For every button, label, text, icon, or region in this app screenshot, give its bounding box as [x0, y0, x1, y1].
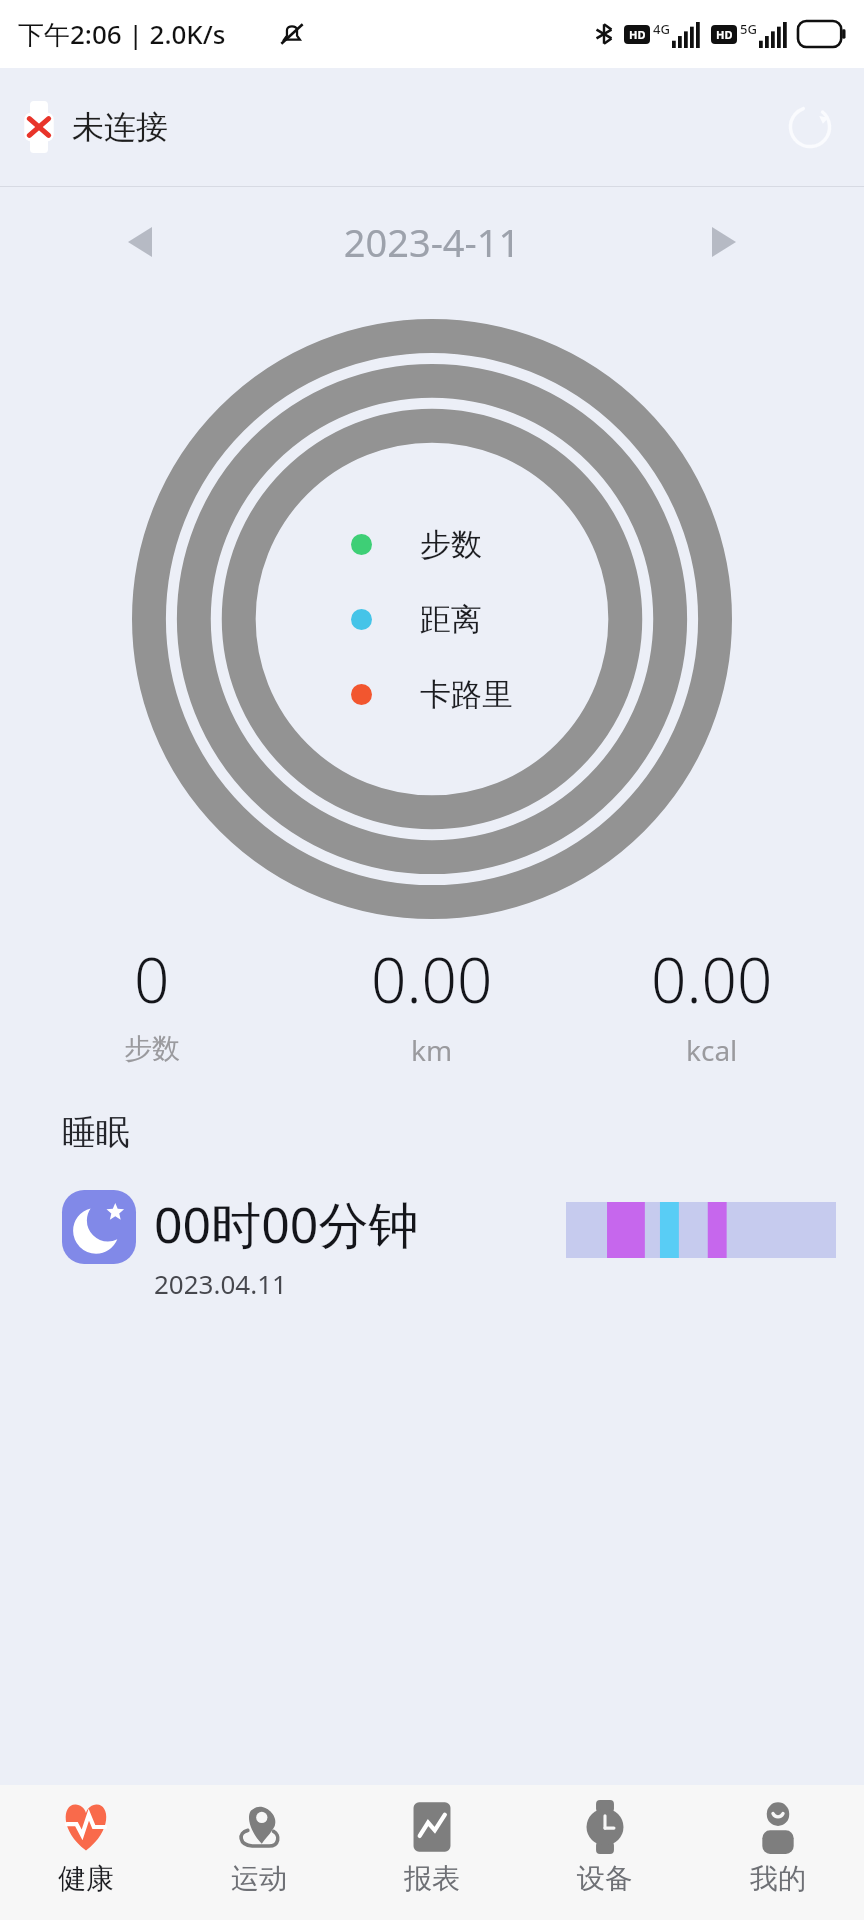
staticText: 运动: [231, 1861, 287, 1896]
button[interactable]: 00时00分钟: [62, 1190, 836, 1301]
staticText: 5G: [740, 20, 757, 38]
button[interactable]: 运动: [172, 1785, 345, 1920]
staticText: 距离: [420, 600, 482, 639]
staticText: 未连接: [72, 107, 168, 147]
staticText: 00时00分钟: [154, 1190, 419, 1258]
staticText: 步数: [420, 525, 482, 564]
button[interactable]: Next day: [694, 212, 754, 272]
staticText: km: [411, 1031, 453, 1069]
button[interactable]: 0.00: [572, 937, 852, 1069]
staticText: 我的: [750, 1861, 806, 1896]
button[interactable]: 0: [12, 937, 292, 1066]
staticText: 2023-4-11: [170, 216, 694, 268]
button[interactable]: 0.00: [292, 937, 572, 1069]
staticText: 步数: [124, 1031, 180, 1066]
staticText: 健康: [58, 1861, 114, 1896]
staticText: 下午2:06 | 2.0K/s: [18, 16, 226, 52]
button[interactable]: 健康: [0, 1785, 172, 1920]
staticText: 0: [134, 937, 170, 1021]
button[interactable]: 报表: [345, 1785, 518, 1920]
staticText: 0.00: [371, 937, 493, 1021]
staticText: 卡路里: [420, 675, 513, 714]
button[interactable]: Refresh: [782, 99, 838, 155]
button[interactable]: 设备: [518, 1785, 691, 1920]
staticText: 0.00: [651, 937, 773, 1021]
staticText: HD: [629, 27, 646, 42]
staticText: 4G: [653, 20, 670, 38]
staticText: HD: [716, 27, 733, 42]
staticText: kcal: [686, 1031, 738, 1069]
button[interactable]: 未连接: [22, 100, 168, 154]
staticText: 2023.04.11: [154, 1266, 287, 1301]
staticText: 报表: [404, 1861, 460, 1896]
button[interactable]: 我的: [691, 1785, 864, 1920]
staticText: 设备: [577, 1861, 633, 1896]
staticText: 睡眠: [62, 1111, 130, 1154]
button[interactable]: Previous day: [110, 212, 170, 272]
